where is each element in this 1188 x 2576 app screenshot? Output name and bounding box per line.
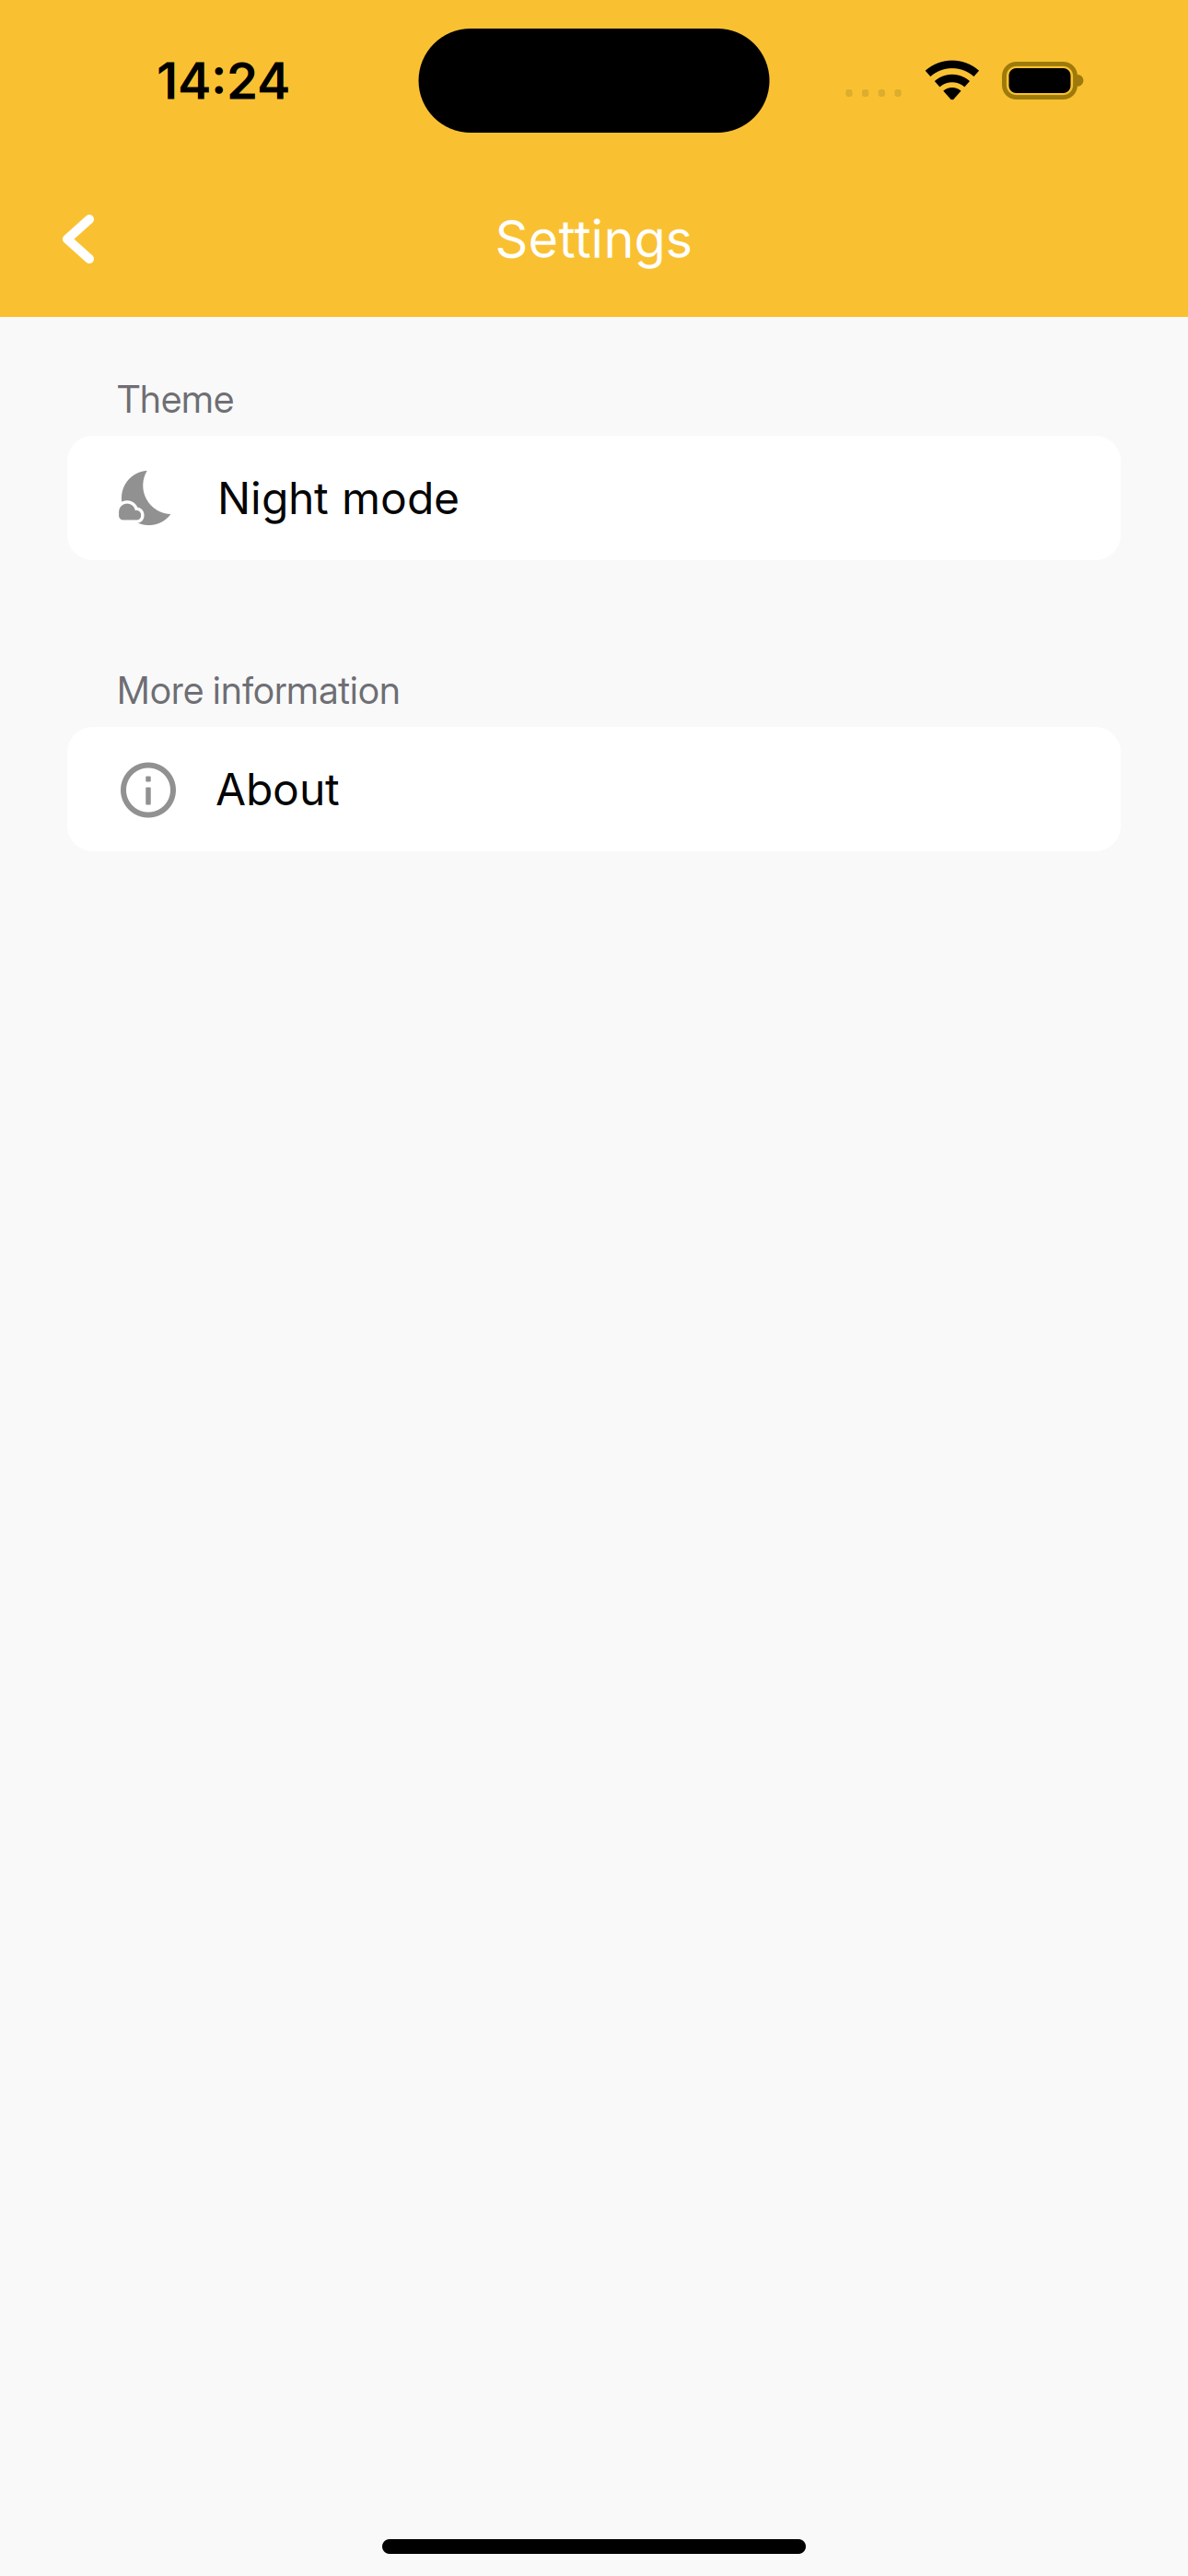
staticText: More information xyxy=(117,667,401,713)
button[interactable]: About xyxy=(67,727,1121,851)
staticText: Settings xyxy=(495,208,693,270)
button[interactable]: Night mode xyxy=(67,436,1121,560)
staticText: About xyxy=(215,762,340,816)
button[interactable]: Back xyxy=(0,182,122,296)
staticText: 14:24 xyxy=(157,50,290,111)
staticText: Night mode xyxy=(217,471,460,525)
staticText: Theme xyxy=(117,376,234,422)
